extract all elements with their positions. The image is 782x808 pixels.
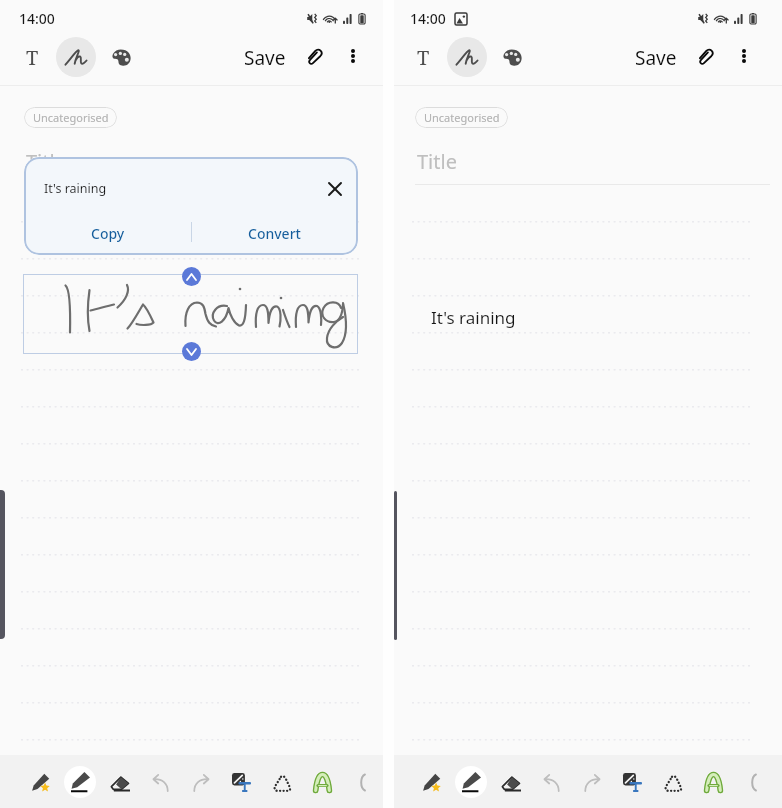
staticText: It's raining xyxy=(44,180,107,197)
button[interactable]: Attach file xyxy=(688,38,724,74)
button[interactable]: Undo xyxy=(534,765,568,799)
button[interactable]: More tools xyxy=(735,765,769,799)
button[interactable]: Pen xyxy=(64,766,96,798)
button[interactable]: Save xyxy=(236,39,294,77)
button[interactable]: Favourite pen xyxy=(23,765,57,799)
button[interactable]: Convert to text xyxy=(615,765,649,799)
button[interactable]: Lasso select xyxy=(265,765,299,799)
button[interactable]: Handwriting mode xyxy=(56,37,96,77)
button[interactable]: Pen xyxy=(455,766,487,798)
button[interactable]: Handwriting mode xyxy=(447,37,487,77)
staticText: T xyxy=(26,44,39,71)
button[interactable]: Colour palette xyxy=(492,37,532,77)
button[interactable]: Text mode xyxy=(403,37,443,77)
button[interactable]: Expand up xyxy=(182,267,201,286)
staticText: Save xyxy=(635,45,677,71)
button[interactable]: Favourite pen xyxy=(414,765,448,799)
button[interactable]: Auto shape xyxy=(696,765,730,799)
staticText: Uncategorised xyxy=(33,110,109,125)
staticText: Uncategorised xyxy=(424,110,500,125)
button[interactable]: Uncategorised xyxy=(24,107,117,128)
button[interactable]: Eraser xyxy=(103,765,137,799)
button[interactable]: Text mode xyxy=(12,37,52,77)
button[interactable]: More tools xyxy=(344,765,378,799)
staticText: 14:00 xyxy=(410,9,446,28)
button[interactable]: Undo xyxy=(143,765,177,799)
staticText: Title xyxy=(26,148,66,175)
button[interactable]: Convert xyxy=(191,216,358,250)
button[interactable]: Save xyxy=(627,39,685,77)
button[interactable]: Colour palette xyxy=(101,37,141,77)
button[interactable]: Redo xyxy=(575,765,609,799)
button[interactable]: Attach file xyxy=(297,38,333,74)
button[interactable]: Close suggestion xyxy=(318,172,352,206)
button[interactable]: Convert to text xyxy=(224,765,258,799)
button[interactable]: More options xyxy=(726,38,762,74)
button[interactable]: Eraser xyxy=(494,765,528,799)
button[interactable]: Lasso select xyxy=(656,765,690,799)
button[interactable]: Uncategorised xyxy=(415,107,508,128)
staticText: It's raining xyxy=(431,306,516,329)
button[interactable]: More options xyxy=(335,38,371,74)
button[interactable]: Copy xyxy=(24,216,191,250)
staticText: Title xyxy=(417,148,457,175)
staticText: Save xyxy=(244,45,286,71)
staticText: T xyxy=(417,44,430,71)
button[interactable]: Redo xyxy=(184,765,218,799)
staticText: 14:00 xyxy=(19,9,55,28)
button[interactable]: Auto shape xyxy=(305,765,339,799)
staticText: Convert xyxy=(248,224,301,243)
staticText: Copy xyxy=(91,224,125,243)
button[interactable]: Expand down xyxy=(182,342,201,361)
